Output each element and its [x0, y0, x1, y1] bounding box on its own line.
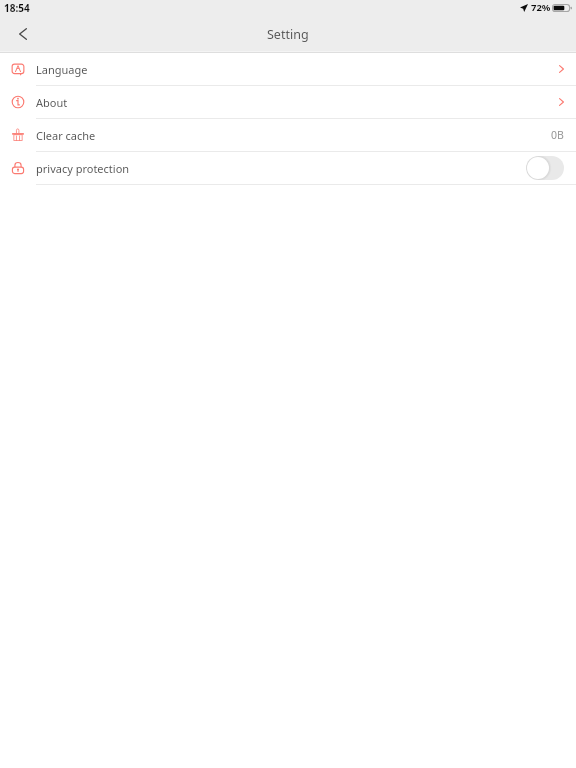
staticText: Clear cache [36, 128, 96, 143]
button[interactable]: About [0, 86, 576, 118]
button[interactable]: privacy protection toggle [526, 156, 564, 180]
button[interactable]: privacy protection [0, 152, 576, 184]
staticText: Language [36, 62, 88, 77]
button[interactable]: Clear cache [0, 119, 576, 151]
staticText: privacy protection [36, 161, 130, 176]
staticText: Setting [267, 26, 309, 43]
staticText: 0B [551, 128, 564, 142]
staticText: 72% [531, 1, 551, 14]
staticText: 18:54 [4, 1, 30, 15]
button[interactable]: Language [0, 53, 576, 85]
staticText: About [36, 95, 68, 110]
button[interactable]: Back [0, 20, 40, 51]
